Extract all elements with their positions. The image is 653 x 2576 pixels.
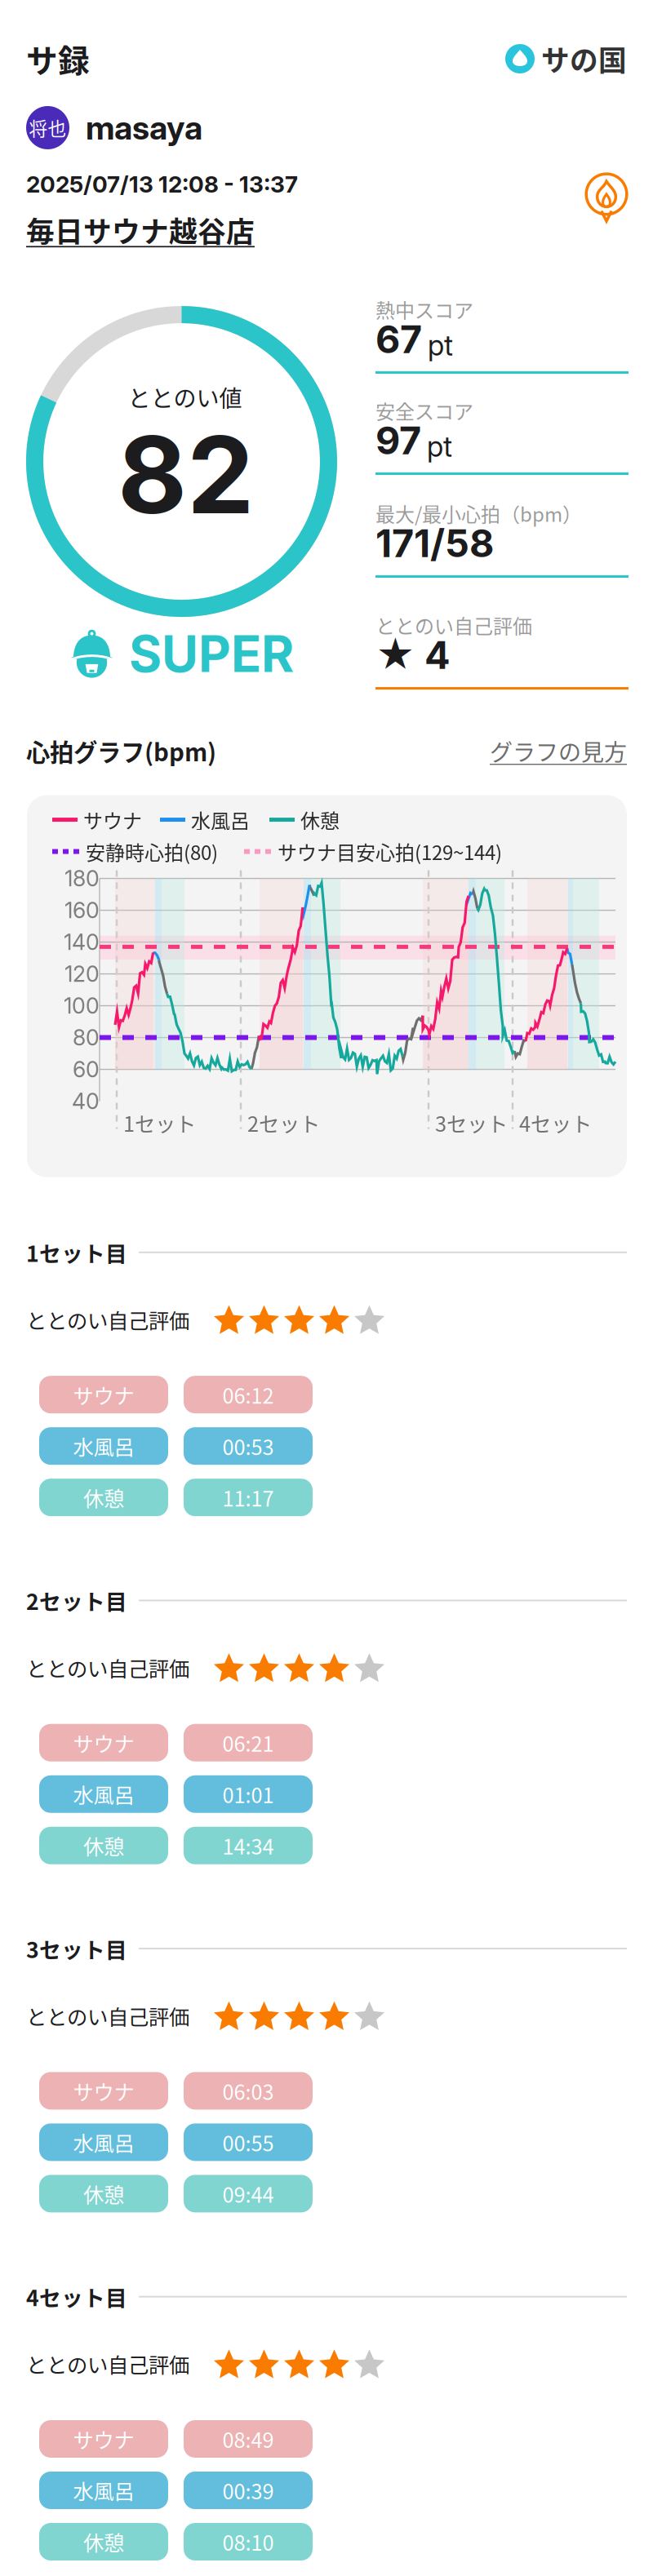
- staticText: 60: [73, 1056, 100, 1083]
- staticText: 67: [375, 316, 422, 362]
- button[interactable]: サウナ施設: [581, 171, 632, 221]
- staticText: 休憩: [83, 2527, 124, 2557]
- staticText: ととのい値: [128, 380, 242, 414]
- staticText: ★ 4: [375, 632, 451, 678]
- staticText: サウナ: [73, 2424, 134, 2454]
- staticText: 最大/最小心拍（bpm）: [375, 499, 582, 528]
- staticText: SUPER: [129, 623, 294, 684]
- staticText: 2025/07/13 12:08 - 13:37: [26, 171, 298, 198]
- staticText: 4セット目: [26, 2281, 127, 2312]
- staticText: 08:10: [222, 2527, 274, 2557]
- staticText: 毎日サウナ越谷店: [26, 210, 255, 251]
- staticText: 4セット: [519, 1108, 592, 1138]
- staticText: 00:53: [222, 1431, 274, 1461]
- staticText: 休憩: [83, 2179, 124, 2209]
- staticText: 97: [375, 417, 421, 464]
- staticText: 将也: [29, 114, 67, 141]
- staticText: 00:39: [222, 2475, 274, 2505]
- staticText: 100: [64, 993, 100, 1019]
- staticText: 1セット: [123, 1108, 196, 1138]
- staticText: 09:44: [222, 2179, 274, 2209]
- staticText: ととのい自己評価: [26, 1305, 189, 1335]
- staticText: サウナ: [73, 2076, 134, 2106]
- staticText: 休憩: [83, 1482, 124, 1512]
- staticText: pt: [428, 328, 453, 362]
- staticText: 160: [64, 897, 100, 923]
- staticText: 82: [118, 410, 254, 539]
- staticText: サの国: [541, 38, 627, 79]
- staticText: 水風呂: [191, 806, 250, 834]
- staticText: サウナ目安心拍(129~144): [278, 837, 502, 866]
- staticText: masaya: [86, 108, 202, 147]
- staticText: 01:01: [222, 1779, 274, 1809]
- button[interactable]: 毎日サウナ越谷店: [26, 210, 255, 251]
- staticText: 171/58: [375, 520, 494, 566]
- staticText: サウナ: [73, 1728, 134, 1758]
- staticText: 08:49: [222, 2424, 274, 2454]
- staticText: サ録: [26, 36, 90, 82]
- staticText: サウナ: [83, 806, 142, 834]
- staticText: 熱中スコア: [375, 295, 473, 324]
- staticText: 06:12: [222, 1380, 274, 1410]
- staticText: 水風呂: [73, 2475, 134, 2505]
- staticText: 水風呂: [73, 1431, 134, 1461]
- staticText: ととのい自己評価: [26, 2349, 189, 2379]
- staticText: 120: [64, 961, 100, 987]
- staticText: 2セット目: [26, 1585, 127, 1616]
- staticText: サウナ: [73, 1380, 134, 1410]
- staticText: ととのい自己評価: [26, 2001, 189, 2031]
- staticText: 2セット: [247, 1108, 320, 1138]
- staticText: グラフの見方: [490, 734, 627, 767]
- staticText: 3セット: [435, 1108, 508, 1138]
- button[interactable]: グラフの見方: [490, 734, 627, 767]
- staticText: ととのい自己評価: [375, 611, 532, 639]
- staticText: 水風呂: [73, 2127, 134, 2157]
- staticText: 40: [72, 1088, 100, 1114]
- staticText: pt: [427, 429, 452, 463]
- staticText: 休憩: [83, 1831, 124, 1860]
- button[interactable]: サの国: [505, 38, 627, 79]
- staticText: 06:03: [222, 2076, 274, 2106]
- staticText: 休憩: [300, 806, 340, 834]
- staticText: ととのい自己評価: [26, 1653, 189, 1683]
- staticText: 14:34: [222, 1831, 274, 1860]
- staticText: 06:21: [222, 1728, 274, 1758]
- staticText: 140: [64, 929, 100, 955]
- staticText: 安静時心拍(80): [86, 837, 218, 866]
- staticText: 3セット目: [26, 1933, 127, 1964]
- staticText: 心拍グラフ(bpm): [26, 734, 216, 768]
- staticText: 80: [73, 1024, 100, 1051]
- staticText: 00:55: [222, 2127, 274, 2157]
- staticText: 180: [64, 865, 100, 892]
- staticText: 安全スコア: [375, 396, 473, 425]
- staticText: 1セット目: [26, 1237, 127, 1268]
- staticText: 11:17: [222, 1482, 274, 1512]
- staticText: 水風呂: [73, 1779, 134, 1809]
